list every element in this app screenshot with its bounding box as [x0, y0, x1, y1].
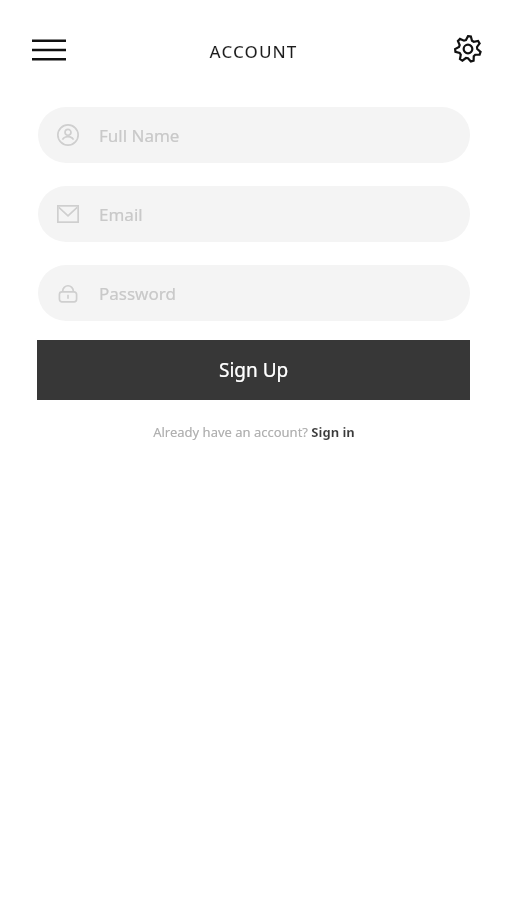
button[interactable]: Sign Up — [37, 340, 470, 400]
staticText: Already have an account? Sign in — [153, 423, 355, 441]
button[interactable]: Full Name — [38, 107, 470, 163]
button[interactable]: Settings — [444, 26, 492, 72]
button[interactable]: Menu — [22, 28, 76, 72]
button[interactable]: Email — [38, 186, 470, 242]
staticText: ACCOUNT — [0, 40, 507, 63]
staticText: Password — [99, 282, 176, 305]
staticText: Sign Up — [219, 357, 289, 383]
staticText: Full Name — [99, 124, 180, 147]
button[interactable]: Already have an account? Sign in — [153, 423, 355, 441]
staticText: Email — [99, 203, 143, 226]
button[interactable]: Password — [38, 265, 470, 321]
